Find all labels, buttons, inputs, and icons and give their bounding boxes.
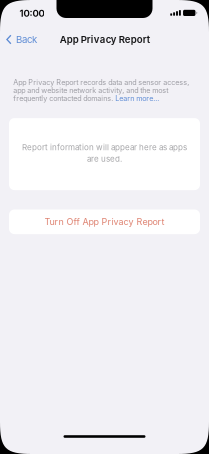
staticText: 10:00 bbox=[19, 7, 44, 19]
staticText: Back bbox=[16, 34, 37, 45]
staticText: frequently contacted domains. bbox=[13, 94, 115, 103]
button[interactable]: Learn more... bbox=[115, 94, 159, 103]
staticText: Learn more... bbox=[115, 94, 159, 103]
staticText: App Privacy Report records data and sens… bbox=[13, 78, 189, 87]
staticText: Turn Off App Privacy Report bbox=[44, 216, 164, 227]
staticText: are used. bbox=[87, 154, 122, 164]
staticText: app and website network activity, and th… bbox=[13, 86, 168, 95]
button[interactable]: Turn Off App Privacy Report bbox=[9, 209, 200, 234]
staticText: App Privacy Report bbox=[60, 34, 150, 45]
button[interactable]: Back bbox=[3, 30, 40, 49]
staticText: Report information will appear here as a… bbox=[22, 143, 187, 152]
